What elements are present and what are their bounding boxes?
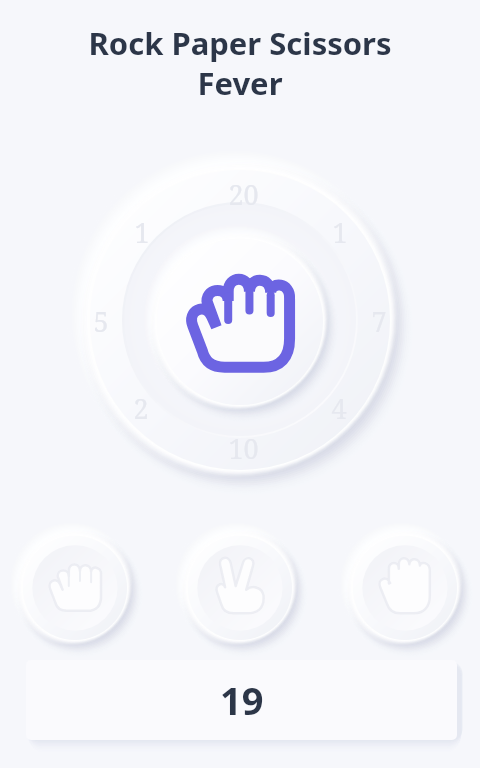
staticText: 4 [331, 390, 347, 424]
button[interactable]: Rock [23, 536, 127, 640]
button[interactable]: Paper [353, 536, 457, 640]
button[interactable]: 19 [26, 660, 457, 740]
staticText: 2 [133, 390, 149, 424]
staticText: Rock Paper Scissors Fever [88, 22, 392, 104]
staticText: 1 [332, 214, 348, 248]
staticText: 19 [220, 674, 264, 726]
staticText: 20 [228, 176, 259, 210]
button[interactable]: Spin dial [90, 170, 240, 320]
staticText: 1 [134, 214, 150, 248]
staticText: 10 [228, 430, 259, 464]
button[interactable]: Scissors [188, 536, 292, 640]
staticText: 7 [371, 303, 387, 337]
staticText: 5 [93, 303, 109, 337]
